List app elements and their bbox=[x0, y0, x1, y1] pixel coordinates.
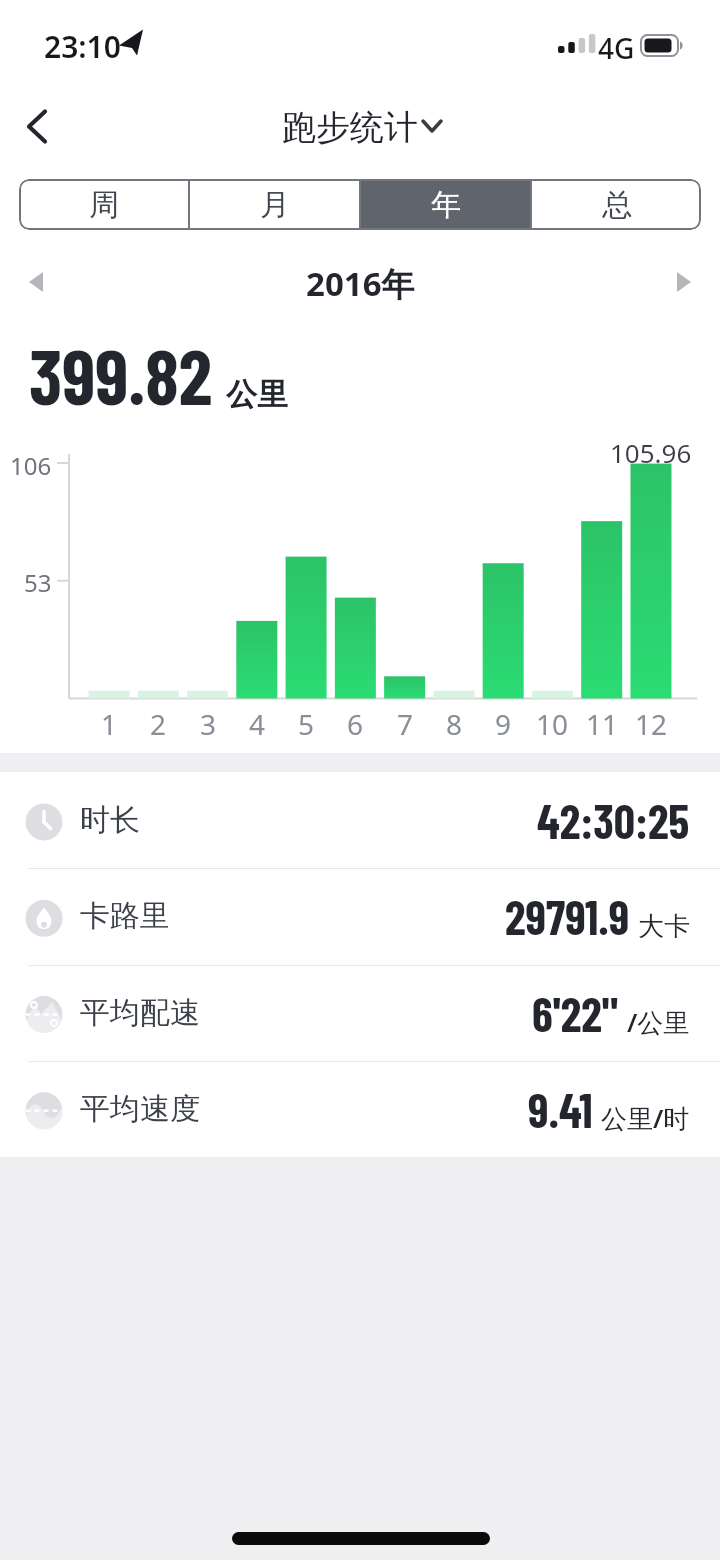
staticText: 4 bbox=[249, 705, 266, 737]
staticText: 105.96 bbox=[610, 435, 692, 463]
button[interactable]: 年 bbox=[361, 179, 530, 230]
button[interactable] bbox=[14, 100, 66, 152]
staticText: 时长 bbox=[80, 801, 140, 839]
button[interactable]: 周 bbox=[19, 179, 188, 230]
staticText: 2 bbox=[150, 705, 167, 737]
button[interactable]: 时长 bbox=[0, 772, 720, 868]
staticText: 大卡 bbox=[638, 910, 690, 943]
staticText: 4G bbox=[598, 29, 635, 67]
staticText: 卡路里 bbox=[80, 897, 170, 935]
staticText: 42:30:25 bbox=[537, 792, 690, 848]
button[interactable]: 卡路里 bbox=[0, 868, 720, 964]
staticText: 平均配速 bbox=[80, 994, 200, 1032]
staticText: 6 bbox=[347, 705, 364, 737]
staticText: 3 bbox=[200, 705, 217, 737]
staticText: 9 bbox=[495, 705, 512, 737]
staticText: 10 bbox=[536, 705, 569, 737]
staticText: 1 bbox=[101, 705, 118, 737]
staticText: 公里/时 bbox=[601, 1100, 690, 1136]
staticText: 29791.9 bbox=[505, 888, 630, 944]
button[interactable]: 平均配速 bbox=[0, 965, 720, 1061]
staticText: 399.82 bbox=[29, 329, 212, 420]
staticText: 5 bbox=[298, 705, 315, 737]
staticText: 11 bbox=[586, 705, 619, 737]
staticText: 公里 bbox=[226, 375, 288, 414]
staticText: 平均速度 bbox=[80, 1090, 200, 1128]
staticText: 6'22" bbox=[532, 985, 619, 1041]
button[interactable] bbox=[662, 262, 706, 304]
button[interactable]: 跑步统计 bbox=[282, 106, 418, 149]
staticText: 12 bbox=[635, 705, 668, 737]
staticText: 2016年 bbox=[306, 261, 415, 303]
button[interactable]: 月 bbox=[190, 179, 359, 230]
staticText: 53 bbox=[24, 566, 52, 594]
staticText: 106 bbox=[10, 449, 52, 477]
staticText: 8 bbox=[446, 705, 463, 737]
staticText: 年 bbox=[431, 186, 461, 224]
staticText: /公里 bbox=[627, 1004, 690, 1040]
staticText: 23:10 bbox=[44, 26, 121, 67]
staticText: 月 bbox=[260, 186, 290, 224]
staticText: 9.41 bbox=[528, 1081, 593, 1137]
button[interactable]: 平均速度 bbox=[0, 1061, 720, 1157]
staticText: 总 bbox=[602, 186, 632, 224]
staticText: 周 bbox=[89, 186, 119, 224]
staticText: 7 bbox=[397, 705, 414, 737]
button[interactable]: 总 bbox=[532, 179, 701, 230]
button[interactable] bbox=[14, 262, 58, 304]
